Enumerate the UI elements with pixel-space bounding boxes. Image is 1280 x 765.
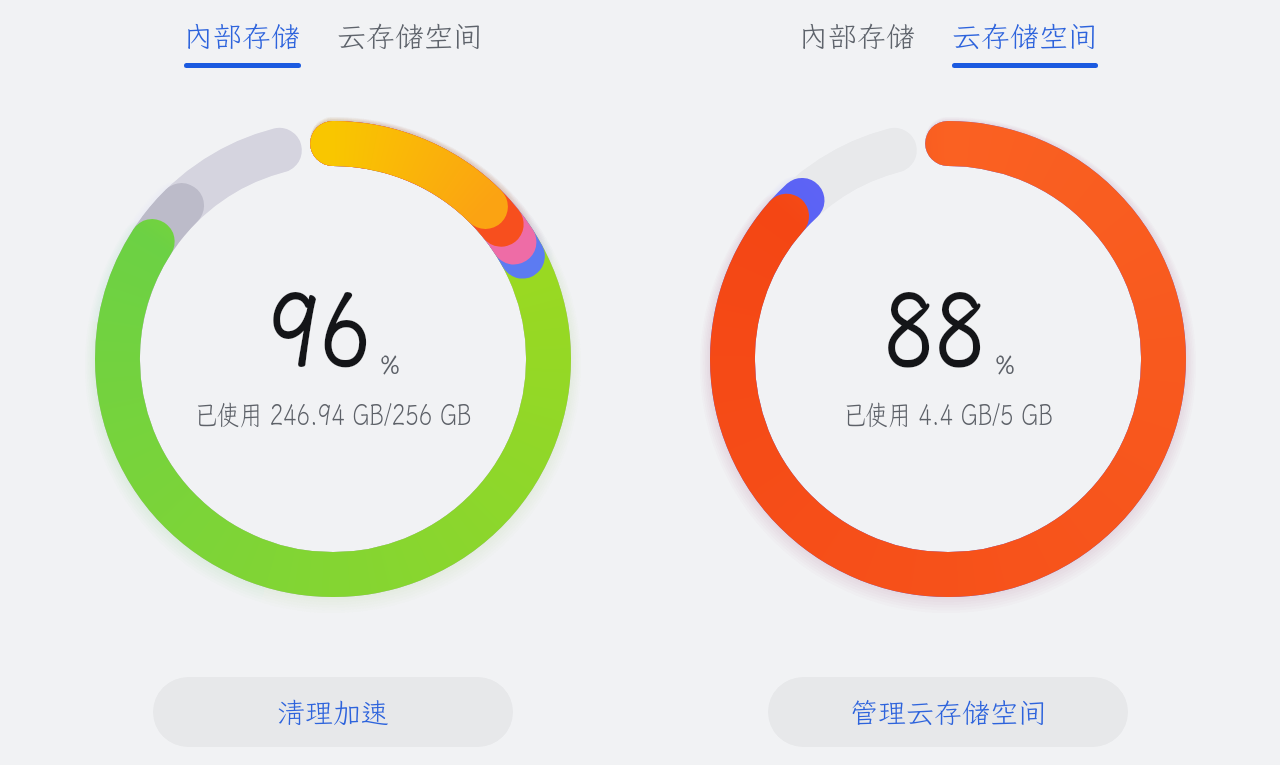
staticText: 管理云存储空间 [850,694,1047,731]
staticText: 96 [269,261,371,394]
staticText: 88 [884,261,986,394]
button[interactable]: 清理加速 [153,677,513,747]
staticText: % [380,348,401,381]
button[interactable]: 云存储空间 [950,17,1100,68]
staticText: 已使用 246.94 GB/256 GB [195,396,471,433]
staticText: 云存储空间 [337,17,483,55]
staticText: 内部存储 [799,17,916,55]
staticText: 云存储空间 [952,17,1098,55]
staticText: 内部存储 [184,17,301,55]
staticText: 已使用 4.4 GB/5 GB [843,396,1053,433]
button[interactable]: 管理云存储空间 [768,677,1128,747]
button[interactable]: 内部存储 [797,17,918,68]
button[interactable]: 内部存储 [182,17,303,68]
button[interactable]: 云存储空间 [335,17,485,68]
staticText: % [995,348,1016,381]
staticText: 清理加速 [277,694,390,731]
